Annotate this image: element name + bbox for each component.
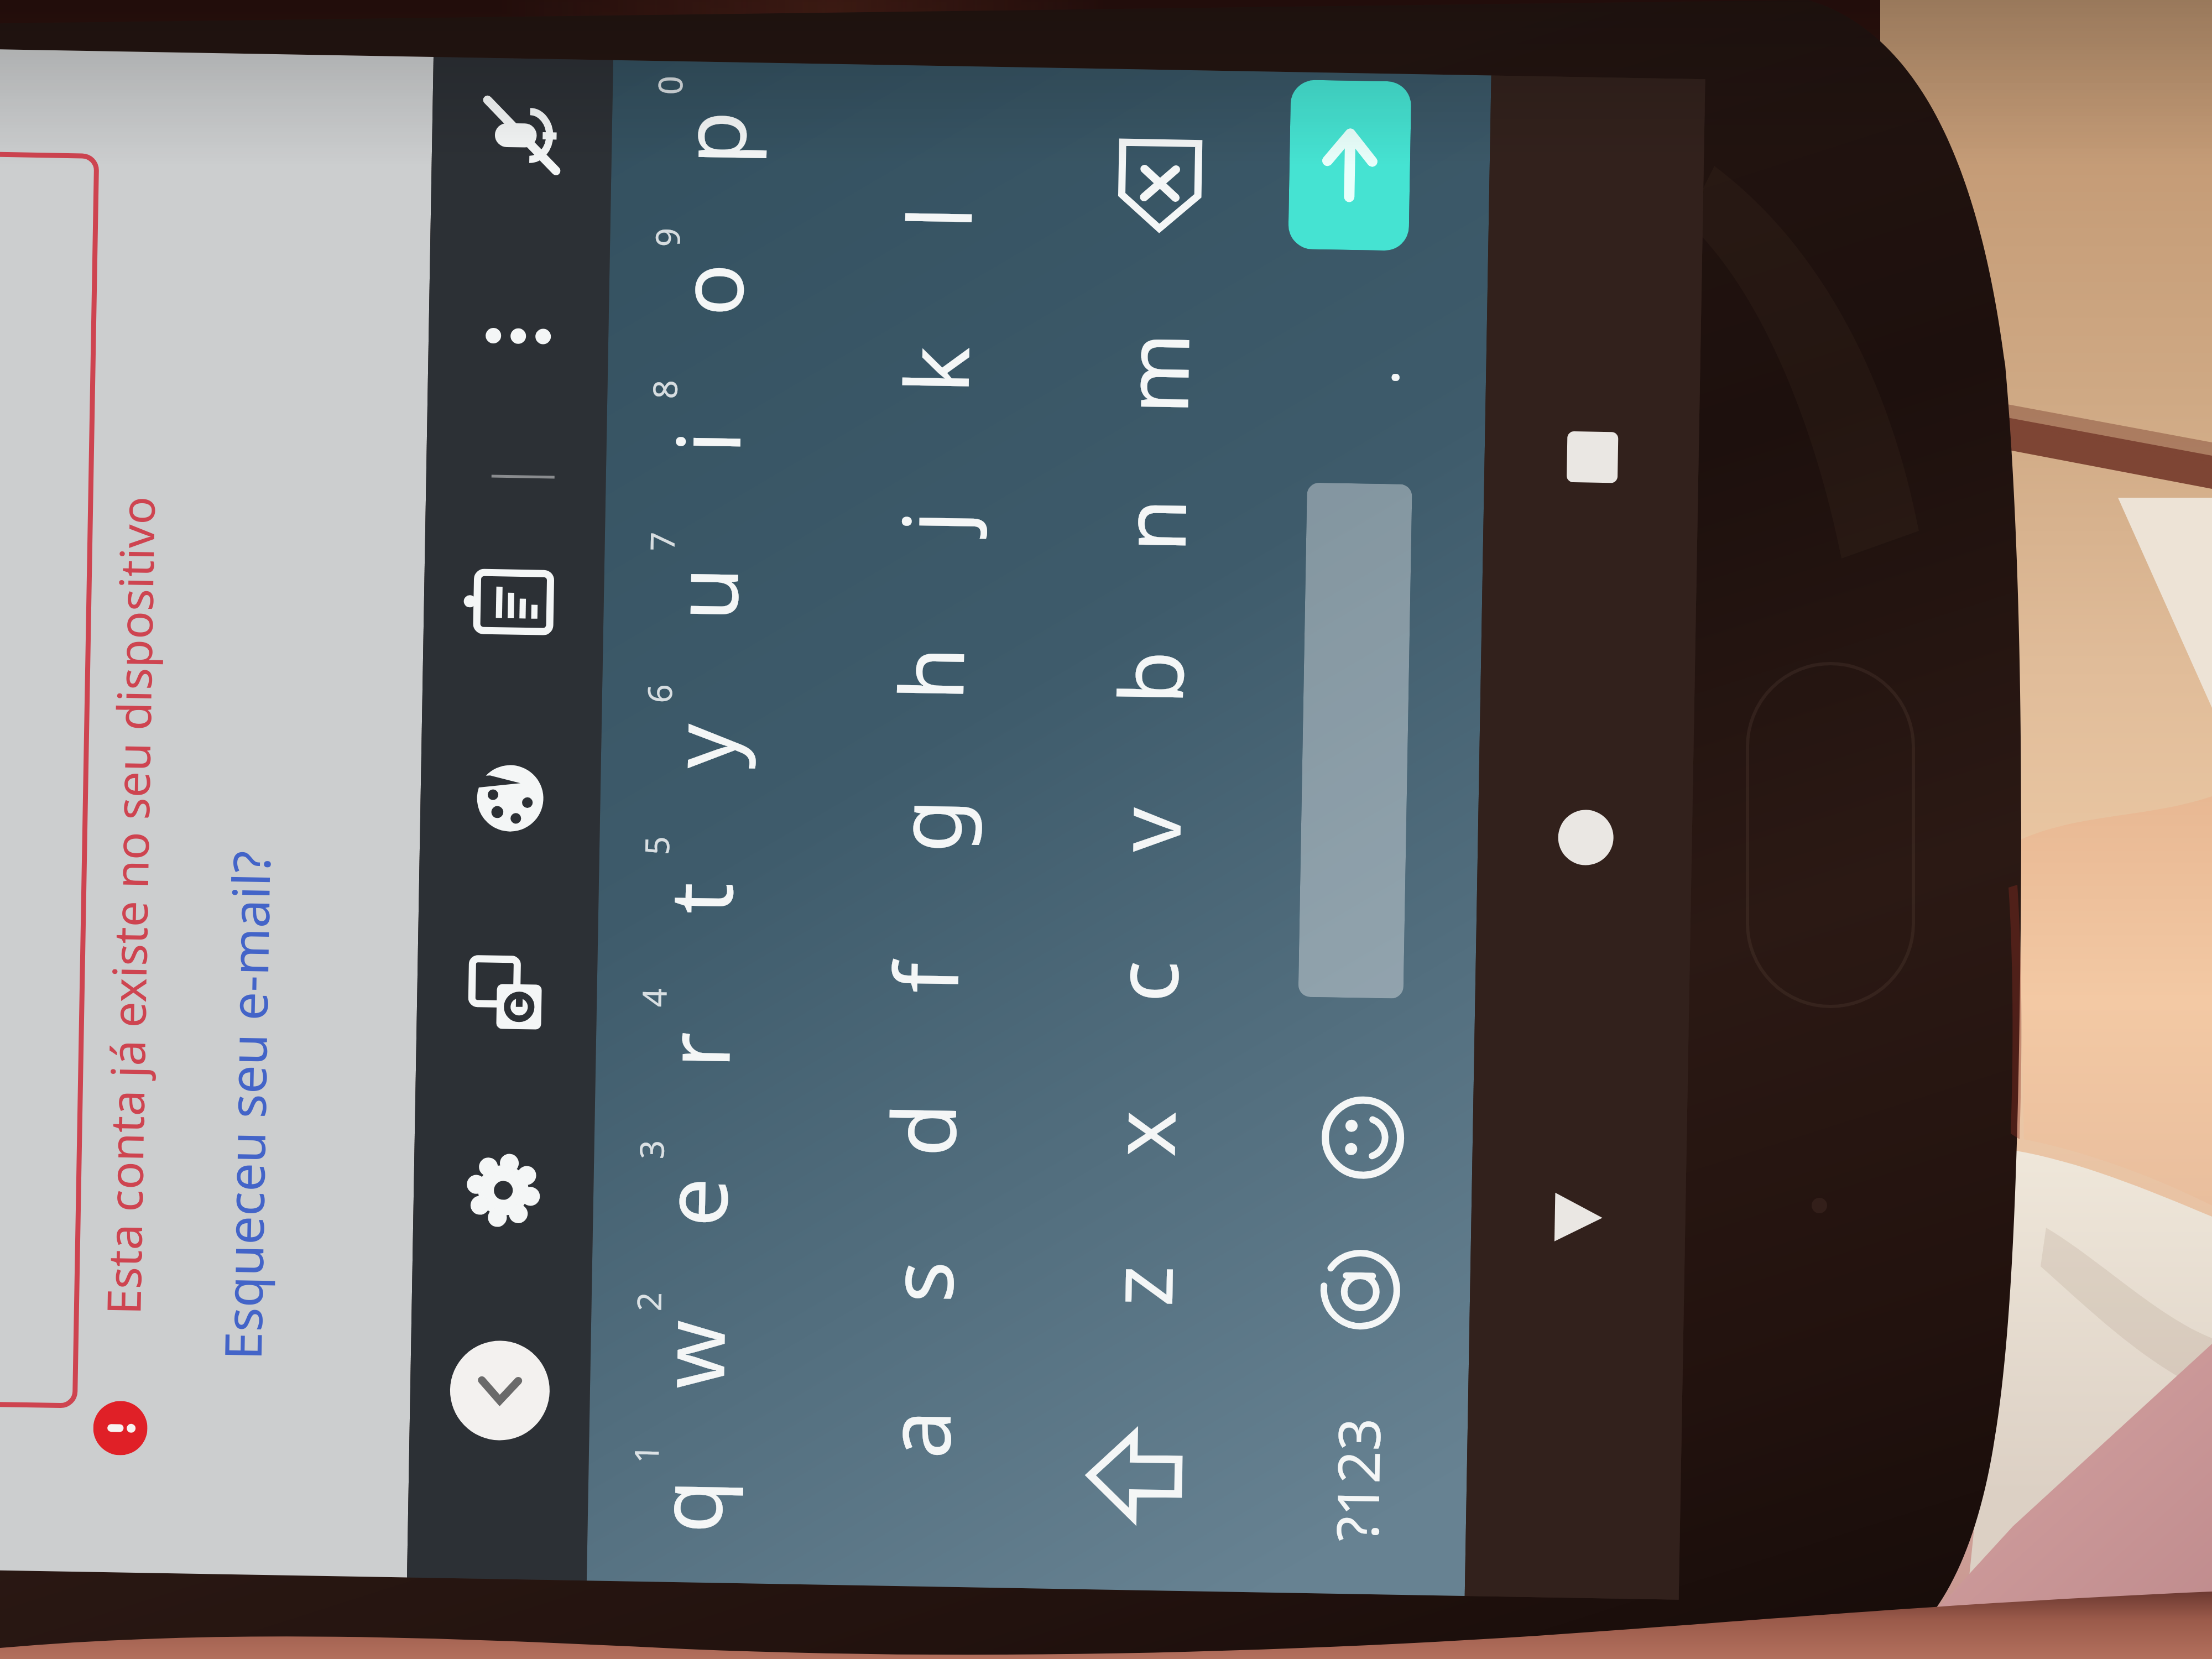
button[interactable]: v [1038,752,1260,908]
staticText: b [1089,649,1209,705]
button[interactable]: Esqueceu seu e-mail? [207,850,285,1361]
staticText: Esqueceu seu e-mail? [207,850,285,1361]
staticText: g [867,797,987,854]
staticText: x [1081,1109,1201,1158]
button[interactable]: Backspace [1048,67,1272,299]
button[interactable]: n [1043,448,1265,603]
button[interactable]: m [1046,296,1268,451]
button[interactable]: w [589,1276,811,1432]
staticText: Esta conta já existe no seu dispositivo [91,495,168,1315]
button[interactable]: More options [434,252,603,421]
button[interactable]: Shift [1026,1360,1249,1592]
staticText: m [1094,331,1215,415]
button[interactable]: Themes [426,714,595,883]
button[interactable]: Settings [419,1106,588,1275]
button[interactable]: g [818,748,1040,904]
button[interactable]: b [1040,600,1262,756]
button[interactable]: s [810,1204,1032,1360]
staticText: w [630,1319,750,1390]
button[interactable]: j [823,444,1046,600]
staticText: e [633,1176,753,1228]
staticText: z [1079,1264,1198,1308]
staticText: 5 [634,835,679,855]
staticText: y [641,723,761,769]
button[interactable]: Home [1496,748,1676,928]
button[interactable]: ?123 [1245,1364,1469,1596]
staticText: 7 [639,531,685,551]
button[interactable]: x [1032,1056,1254,1212]
button[interactable]: Clipboard [429,518,598,686]
staticText: a [857,1408,976,1460]
button[interactable]: Back [1489,1127,1669,1307]
staticText: u [644,566,764,622]
button[interactable]: t [597,820,819,976]
button[interactable]: Emoji [1252,1060,1474,1216]
button[interactable]: f [816,900,1038,1056]
staticText: l [878,205,997,230]
button[interactable]: e [592,1124,814,1280]
staticText: h [870,645,990,702]
button[interactable]: Translate [422,910,591,1078]
staticText: v [1087,806,1206,853]
staticText: 2 [626,1291,671,1312]
staticText: k [875,345,995,394]
button[interactable]: Voice input off [437,51,606,220]
button[interactable]: Expand toolbar [415,1306,584,1475]
button[interactable]: c [1035,904,1257,1060]
staticText: 0 [647,75,693,95]
staticText: 1 [623,1444,669,1464]
staticText: o [649,262,769,317]
button[interactable]: y [600,668,822,824]
button[interactable]: u [603,516,825,672]
staticText: j [873,509,992,534]
staticText: d [862,1101,982,1158]
button[interactable]: l [829,140,1051,296]
staticText: n [1092,497,1212,553]
button[interactable]: q [587,1429,809,1584]
button[interactable]: Space [1255,451,1485,1064]
button[interactable]: . [1265,299,1487,455]
button[interactable]: z [1030,1208,1252,1364]
button[interactable]: k [826,292,1048,448]
button[interactable]: Recents [1502,367,1682,547]
button[interactable]: o [608,212,830,368]
button[interactable]: d [813,1052,1035,1208]
staticText: f [865,962,984,994]
staticText: r [636,1031,756,1069]
staticText: c [1084,959,1204,1003]
staticText: s [859,1260,979,1304]
staticText: 4 [631,987,677,1008]
button[interactable]: h [821,596,1043,752]
button[interactable]: i [605,364,827,520]
staticText: 9 [644,227,690,247]
button[interactable]: a [808,1356,1030,1512]
staticText: 3 [628,1139,674,1160]
button[interactable]: At sign [1249,1212,1471,1368]
staticText: q [628,1478,748,1534]
button[interactable]: p [611,60,833,216]
staticText: 8 [642,379,687,399]
staticText: p [652,109,772,166]
button[interactable]: r [595,972,817,1128]
staticText: 6 [636,683,682,703]
button[interactable] [0,150,97,1406]
staticText: . [1337,369,1416,385]
button[interactable]: Enter [1268,71,1491,303]
staticText: t [639,881,758,915]
staticText: i [647,430,766,454]
staticText: ?123 [1317,1417,1398,1542]
